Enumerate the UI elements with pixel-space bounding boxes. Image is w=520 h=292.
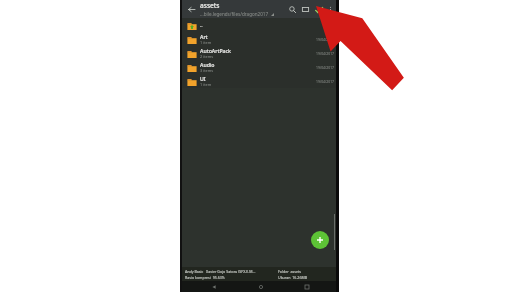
button[interactable]: Back xyxy=(199,281,229,292)
button[interactable]: Select all xyxy=(299,3,312,16)
button[interactable]: Search xyxy=(286,3,299,16)
button[interactable]: AutoArtPack xyxy=(182,46,339,60)
staticText: 19/04/2017 xyxy=(316,37,335,42)
staticText: UI xyxy=(200,75,206,82)
button[interactable]: Back xyxy=(185,3,198,16)
staticText: 19/04/2017 xyxy=(316,65,335,70)
staticText: 19/04/2017 xyxy=(316,51,335,56)
button[interactable]: Audio xyxy=(182,60,339,74)
staticText: 2 items xyxy=(200,54,214,59)
staticText: Ukuran 16.26MB xyxy=(278,275,308,280)
button[interactable]: Art xyxy=(182,32,339,46)
staticText: assets xyxy=(200,1,220,10)
button[interactable]: .. xyxy=(182,18,339,32)
button[interactable]: More options xyxy=(325,4,336,15)
staticText: AutoArtPack xyxy=(200,47,231,54)
button[interactable]: Add xyxy=(311,231,329,249)
staticText: .. xyxy=(200,22,203,29)
button[interactable]: UI xyxy=(182,74,339,88)
staticText: Rasio kompresi 95.63% xyxy=(185,275,225,280)
staticText: Art xyxy=(200,33,208,40)
staticText: Andy Basic Xavier Gojo Satoru (SFX.E.M..… xyxy=(185,269,256,274)
staticText: Audio xyxy=(200,61,215,68)
button[interactable]: Home xyxy=(246,281,276,292)
staticText: 1 item xyxy=(200,82,212,87)
button[interactable]: Recents xyxy=(292,281,322,292)
staticText: ...bile.legends/files/dragon2017 xyxy=(200,11,269,17)
staticText: 3 items xyxy=(200,68,214,73)
button[interactable]: Confirm selection xyxy=(312,3,325,16)
staticText: 19/04/2017 xyxy=(316,79,335,84)
staticText: Folder assets xyxy=(278,269,302,274)
staticText: 1 item xyxy=(200,40,212,45)
